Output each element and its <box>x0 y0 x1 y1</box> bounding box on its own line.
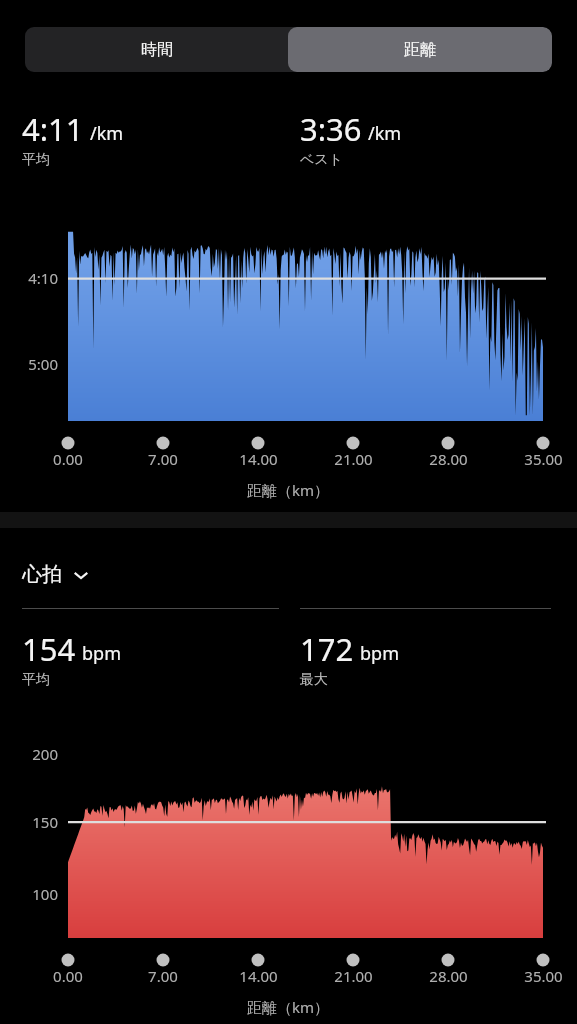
staticText: 100 <box>32 884 58 904</box>
staticText: 14.00 <box>239 449 278 469</box>
button[interactable]: 心拍 <box>22 562 90 587</box>
staticText: 平均 <box>22 151 50 169</box>
staticText: ベスト <box>300 151 343 169</box>
staticText: 0.00 <box>53 966 83 986</box>
button[interactable]: 距離 <box>288 27 552 72</box>
staticText: 4:11 <box>22 108 84 150</box>
staticText: 28.00 <box>429 449 468 469</box>
other: Expand heart rate <box>72 566 90 584</box>
staticText: 平均 <box>22 671 50 689</box>
staticText: 心拍 <box>22 562 62 587</box>
staticText: 5:00 <box>28 354 58 374</box>
staticText: 28.00 <box>429 966 468 986</box>
staticText: 35.00 <box>524 966 563 986</box>
staticText: 4:10 <box>28 268 58 288</box>
staticText: bpm <box>82 641 121 666</box>
staticText: 200 <box>32 744 58 764</box>
staticText: 7.00 <box>148 966 178 986</box>
staticText: 150 <box>32 812 58 832</box>
staticText: 距離（km） <box>247 480 330 500</box>
staticText: 時間 <box>141 40 173 60</box>
staticText: 21.00 <box>334 449 373 469</box>
staticText: 0.00 <box>53 449 83 469</box>
staticText: 154 <box>22 628 76 670</box>
staticText: /km <box>368 121 402 146</box>
button[interactable]: 時間 <box>25 27 288 72</box>
staticText: 21.00 <box>334 966 373 986</box>
staticText: 35.00 <box>524 449 563 469</box>
staticText: 14.00 <box>239 966 278 986</box>
staticText: 172 <box>300 628 354 670</box>
staticText: 距離（km） <box>247 997 330 1017</box>
staticText: 3:36 <box>300 108 362 150</box>
staticText: 最大 <box>300 671 328 689</box>
staticText: bpm <box>360 641 399 666</box>
staticText: 7.00 <box>148 449 178 469</box>
staticText: /km <box>90 121 124 146</box>
staticText: 距離 <box>404 40 436 60</box>
